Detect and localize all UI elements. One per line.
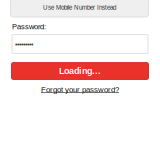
staticText: Forgot your password? — [41, 85, 119, 94]
staticText: Password: — [12, 22, 46, 31]
button[interactable]: Use Mobile Number Instead — [10, 0, 148, 17]
staticText: Loading... — [59, 66, 101, 76]
button[interactable]: Forgot your password? — [41, 85, 119, 94]
staticText: Use Mobile Number Instead — [43, 4, 116, 11]
staticText: ••••••••• — [15, 40, 33, 48]
button[interactable]: Loading... — [11, 62, 148, 79]
